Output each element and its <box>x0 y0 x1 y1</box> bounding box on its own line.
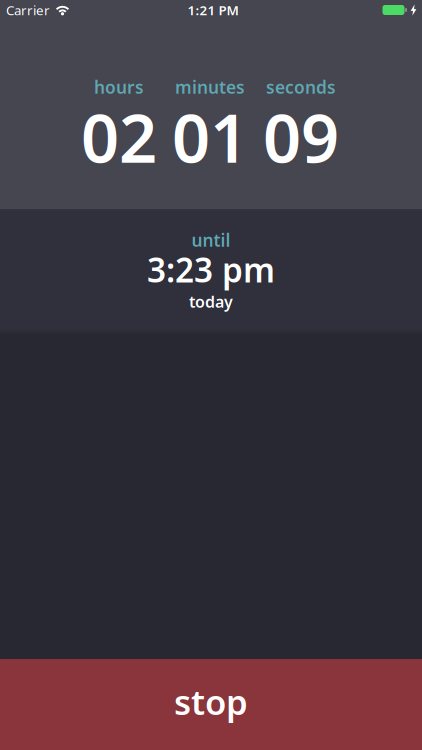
staticText: 02 <box>81 93 157 181</box>
button[interactable]: stop <box>0 659 422 750</box>
staticText: stop <box>174 678 248 724</box>
staticText: 3:23 pm <box>147 247 275 292</box>
staticText: today <box>189 291 233 312</box>
staticText: hours <box>94 75 144 98</box>
staticText: 01 <box>172 93 248 181</box>
staticText: minutes <box>175 75 245 98</box>
staticText: seconds <box>266 75 336 98</box>
staticText: 09 <box>263 93 339 181</box>
staticText: until <box>191 228 230 251</box>
staticText: Carrier <box>6 1 50 19</box>
staticText: 1:21 PM <box>187 1 238 19</box>
